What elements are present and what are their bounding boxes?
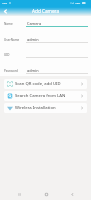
button[interactable]: Wireless Installation (4, 103, 87, 113)
staticText: UID (4, 53, 10, 57)
staticText: admin (27, 37, 39, 42)
staticText: Wireless Installation (15, 105, 56, 111)
staticText: 100% (75, 2, 81, 5)
button[interactable]: Home (37, 187, 55, 200)
staticText: Password (4, 69, 18, 73)
button[interactable]: Search Camera from LAN (4, 91, 87, 101)
staticText: Scan QR code, add UID (15, 81, 61, 87)
button[interactable]: Back (63, 187, 81, 200)
staticText: Add Camera (32, 8, 60, 14)
staticText: Camera (27, 21, 42, 26)
staticText: 10:45 (2, 2, 8, 5)
staticText: Name (4, 22, 13, 26)
staticText: admin (27, 68, 39, 73)
staticText: UserName (4, 38, 20, 42)
button[interactable]: Scan QR code, add UID (4, 79, 87, 89)
button[interactable]: Recent apps (10, 187, 28, 200)
staticText: Search Camera from LAN (15, 93, 66, 99)
button[interactable]: Back (1, 7, 10, 16)
